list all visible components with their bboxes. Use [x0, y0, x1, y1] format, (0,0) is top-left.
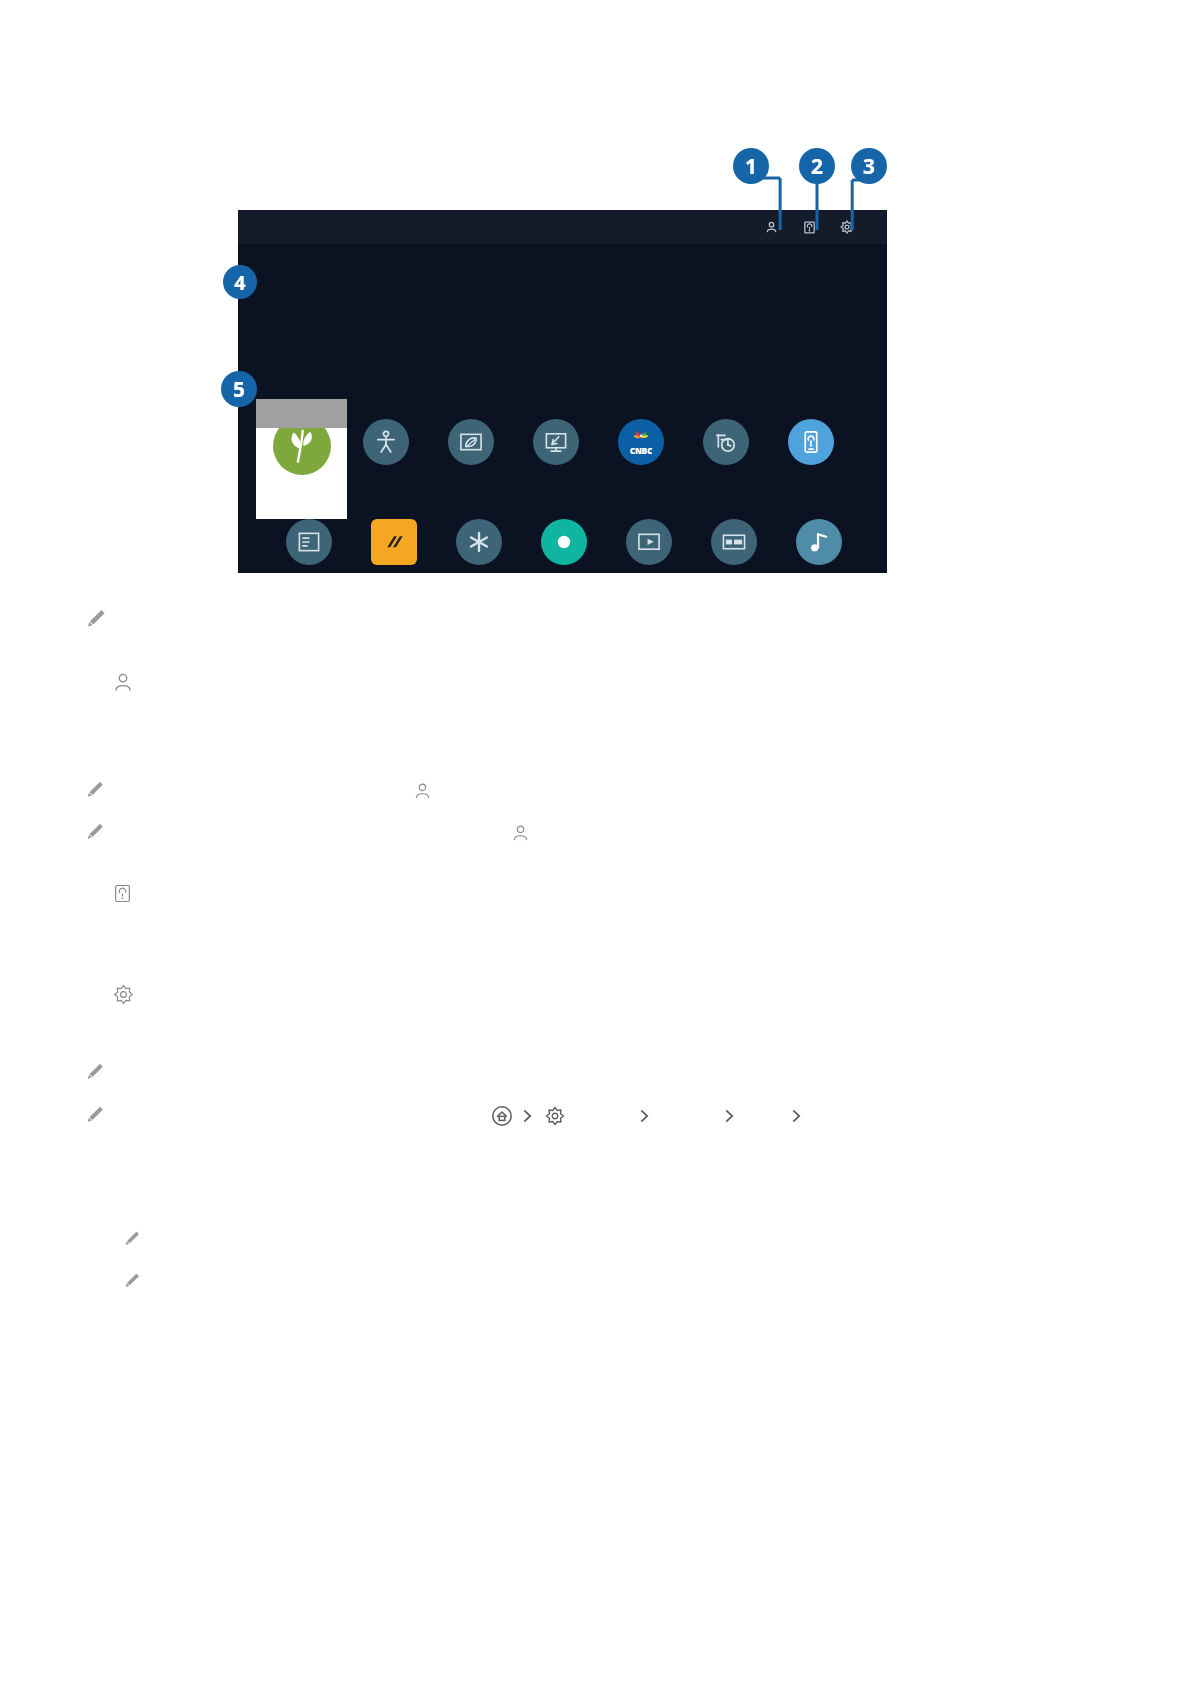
button[interactable]: Apps — [456, 519, 502, 565]
other: Profile icon — [112, 672, 134, 694]
button[interactable]: Screen mirroring — [533, 419, 579, 465]
button[interactable]: Remote help — [788, 419, 834, 465]
button[interactable]: Music — [796, 519, 842, 565]
button[interactable]: CNBC — [618, 419, 664, 465]
button[interactable]: 1 — [733, 148, 769, 184]
button[interactable]: 4 — [223, 265, 257, 299]
button[interactable]: Sleep timer — [703, 419, 749, 465]
staticText: 3 — [863, 152, 875, 180]
staticText: 5 — [233, 375, 245, 403]
staticText: 2 — [811, 152, 823, 180]
staticText: CNBC — [630, 445, 653, 456]
button[interactable]: Settings — [837, 217, 857, 237]
button[interactable]: Subtitles — [711, 519, 757, 565]
button[interactable]: Guide — [286, 519, 332, 565]
button[interactable]: Ambient Mode — [448, 419, 494, 465]
button[interactable]: e-Manual — [799, 217, 819, 237]
button[interactable]: 5 — [221, 371, 257, 407]
button[interactable]: App — [371, 519, 417, 565]
button[interactable]: Settings — [543, 1104, 567, 1128]
button[interactable]: Accessibility — [363, 419, 409, 465]
staticText: 1 — [745, 152, 757, 180]
button[interactable]: Media — [541, 519, 587, 565]
button[interactable]: Home — [490, 1104, 514, 1128]
staticText: 4 — [234, 269, 246, 296]
button[interactable]: Profile — [761, 217, 781, 237]
button[interactable]: 2 — [799, 148, 835, 184]
button[interactable]: Source — [626, 519, 672, 565]
button[interactable]: Selected app — [256, 399, 347, 519]
button[interactable]: 3 — [851, 148, 887, 184]
